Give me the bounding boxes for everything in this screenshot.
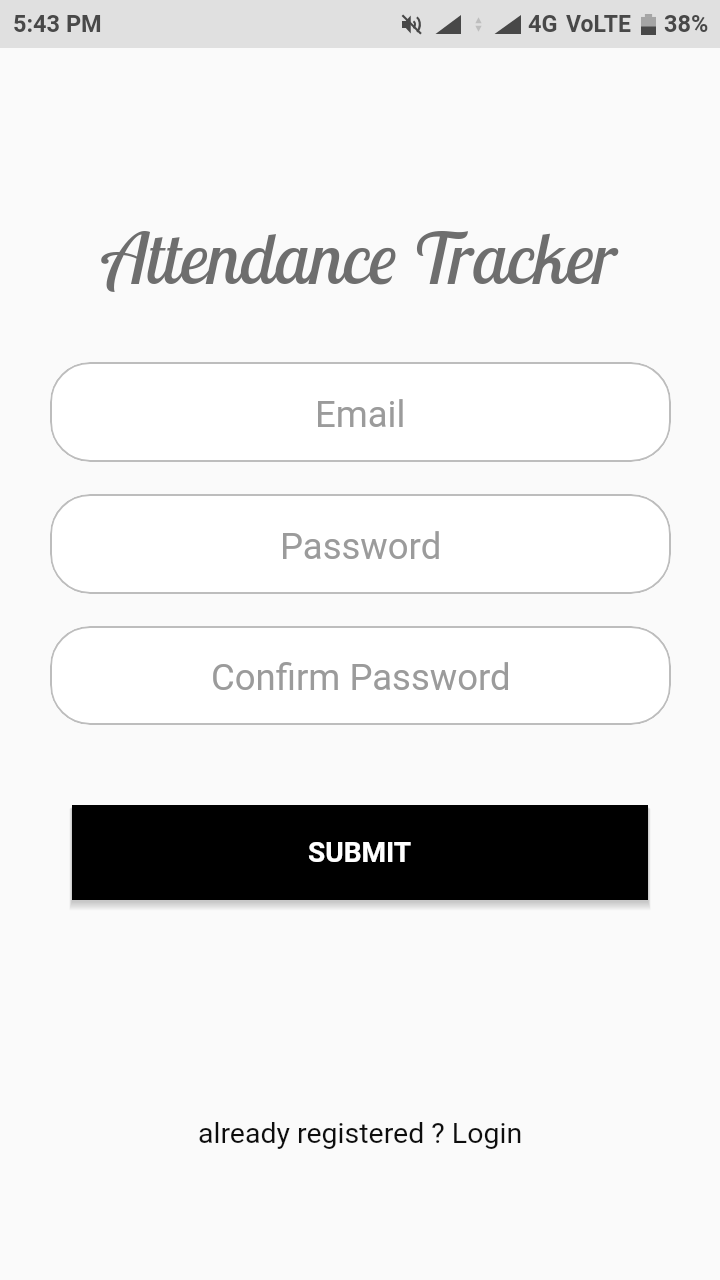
staticText: 38% — [664, 10, 709, 38]
staticText: Attendance Tracker — [104, 212, 617, 301]
other: Battery 38 percent — [641, 14, 656, 35]
button[interactable]: Password — [50, 494, 671, 594]
other: Ringer muted — [402, 15, 421, 34]
staticText: Password — [280, 525, 442, 568]
staticText: 5:43 PM — [13, 10, 102, 38]
other: SIM 2 signal strength — [494, 15, 521, 34]
button[interactable]: Email — [50, 362, 671, 462]
staticText: Confirm Password — [211, 656, 511, 699]
staticText: VoLTE — [566, 11, 631, 38]
button[interactable]: already registered ? Login — [188, 1111, 533, 1156]
button[interactable]: Confirm Password — [50, 626, 671, 725]
staticText: SUBMIT — [308, 836, 412, 869]
other: SIM 1 signal strength — [435, 15, 461, 34]
staticText: Email — [315, 393, 406, 436]
staticText: 4G — [528, 10, 558, 38]
button[interactable]: SUBMIT — [72, 805, 648, 900]
other: Mobile data transfer — [475, 15, 482, 34]
staticText: already registered ? Login — [198, 1117, 523, 1150]
